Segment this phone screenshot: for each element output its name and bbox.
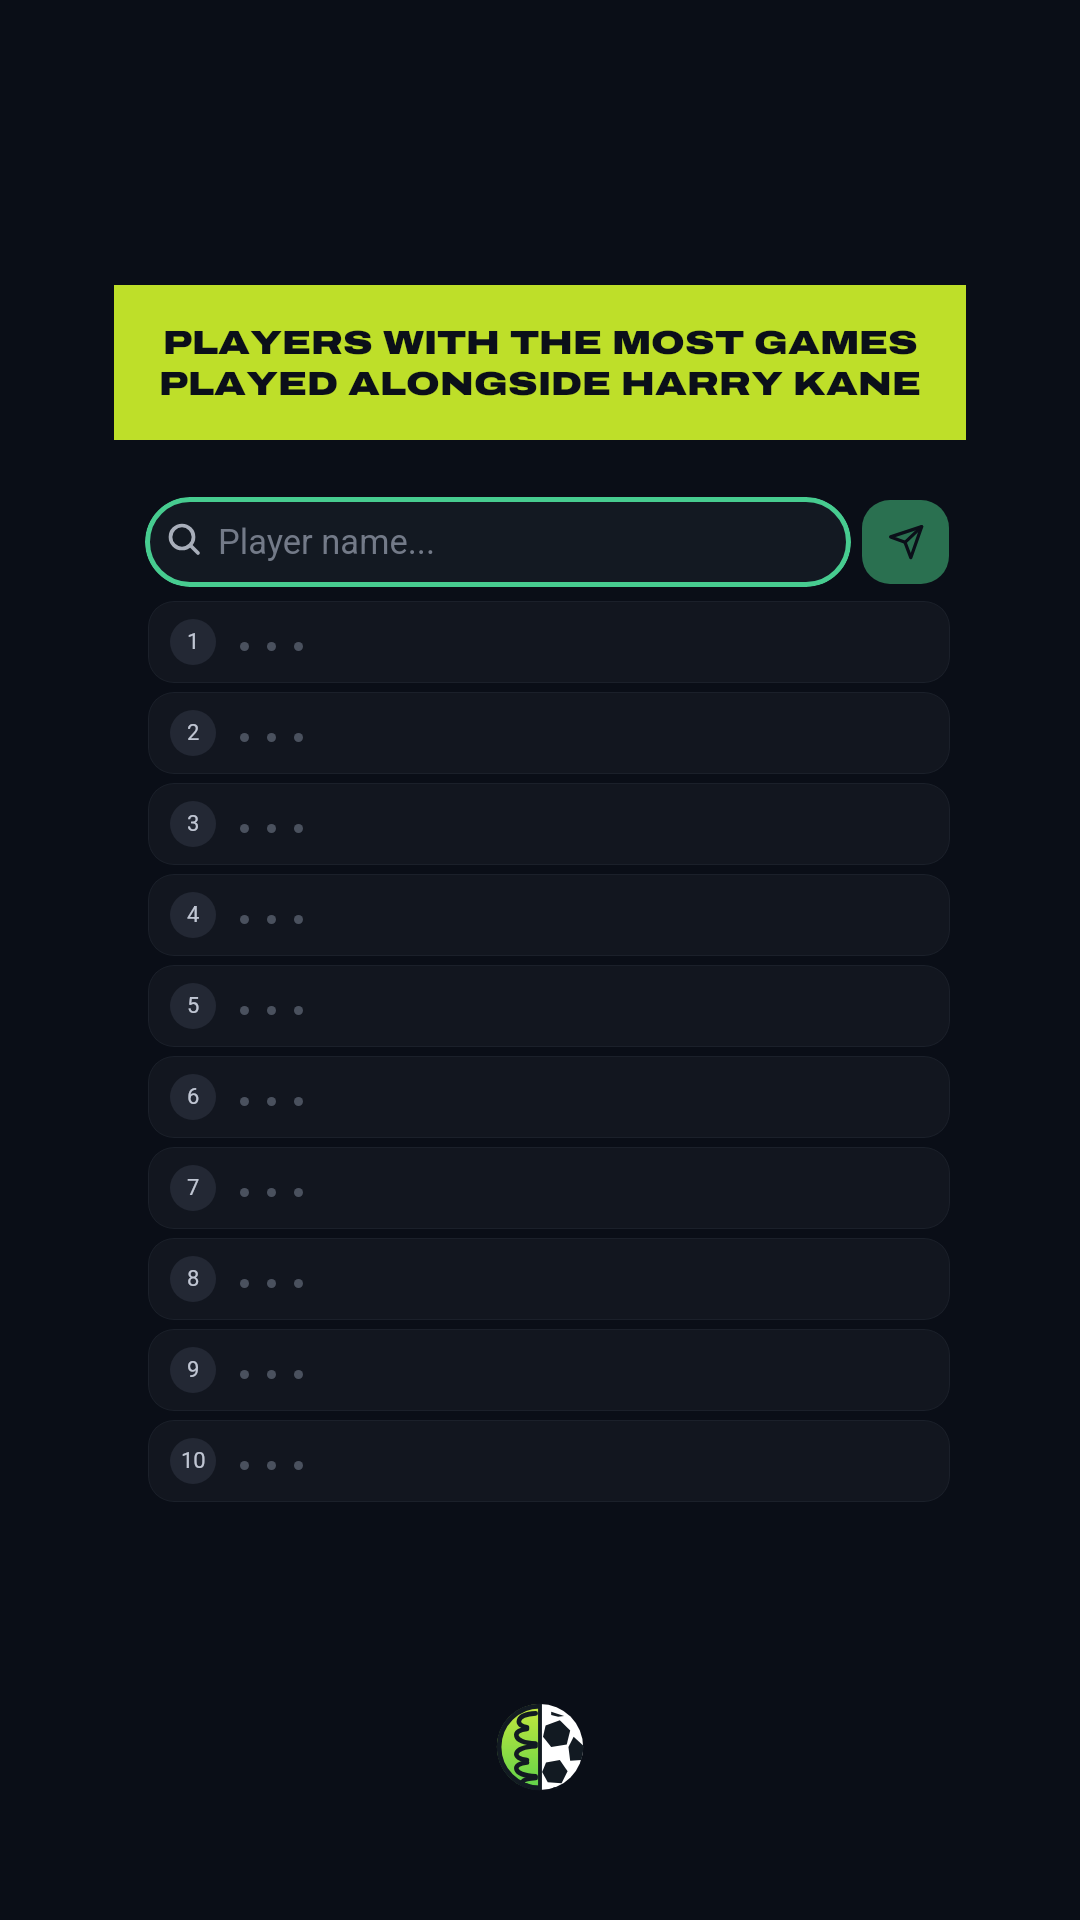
button[interactable]: 4 — [148, 874, 950, 956]
staticText: Player name... — [218, 522, 435, 562]
button[interactable]: 3 — [148, 783, 950, 865]
button[interactable]: 5 — [148, 965, 950, 1047]
button[interactable]: 8 — [148, 1238, 950, 1320]
staticText: 9 — [187, 1357, 200, 1383]
button[interactable]: 7 — [148, 1147, 950, 1229]
staticText: 10 — [181, 1448, 206, 1474]
staticText: 3 — [187, 811, 200, 837]
staticText: 8 — [187, 1266, 200, 1292]
staticText: 4 — [187, 902, 200, 928]
button[interactable]: 2 — [148, 692, 950, 774]
staticText: 1 — [187, 629, 200, 655]
staticText: 6 — [187, 1084, 200, 1110]
button[interactable]: 10 — [148, 1420, 950, 1502]
button[interactable]: Player name... — [145, 497, 851, 587]
staticText: 2 — [187, 720, 200, 746]
button[interactable]: 9 — [148, 1329, 950, 1411]
staticText: 5 — [187, 993, 200, 1019]
button[interactable]: Send — [862, 500, 949, 584]
staticText: 7 — [187, 1175, 200, 1201]
button[interactable]: 6 — [148, 1056, 950, 1138]
button[interactable]: 1 — [148, 601, 950, 683]
